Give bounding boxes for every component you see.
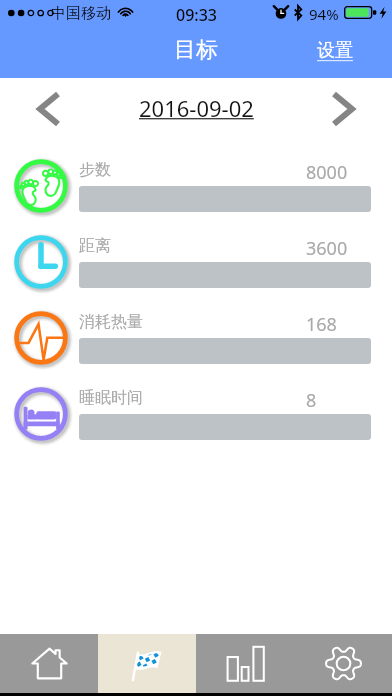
staticText: 2016-09-02	[139, 93, 254, 123]
staticText: 睡眠时间	[79, 388, 143, 408]
button[interactable]: Settings	[294, 634, 392, 693]
button[interactable]: 距离	[0, 224, 392, 300]
staticText: 步数	[79, 160, 111, 180]
button[interactable]: 消耗热量	[0, 300, 392, 376]
staticText: 设置	[317, 39, 353, 62]
staticText: 8	[306, 388, 317, 408]
button[interactable]: 睡眠时间	[0, 376, 392, 452]
button[interactable]: Statistics	[196, 634, 294, 693]
staticText: 94%	[309, 4, 339, 24]
staticText: 中国移动	[51, 4, 111, 23]
staticText: 168	[306, 312, 337, 332]
button[interactable]: Next day	[294, 78, 392, 140]
staticText: 3600	[306, 236, 348, 256]
button[interactable]: 步数	[0, 148, 392, 224]
staticText: 消耗热量	[79, 312, 143, 332]
button[interactable]: 设置	[299, 31, 392, 70]
button[interactable]: Previous day	[0, 78, 98, 140]
staticText: 目标	[174, 36, 218, 64]
staticText: 09:33	[176, 4, 217, 26]
button[interactable]: Goals	[98, 634, 196, 693]
button[interactable]: Home	[0, 634, 98, 693]
staticText: 距离	[79, 236, 111, 256]
staticText: 8000	[306, 160, 348, 180]
